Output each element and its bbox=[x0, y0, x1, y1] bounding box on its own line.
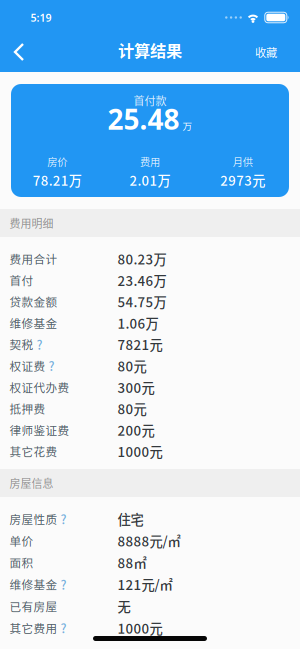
button[interactable]: 返回 bbox=[0, 31, 29, 73]
staticText: 1.06万 bbox=[117, 313, 158, 332]
staticText: 月供 bbox=[233, 154, 253, 169]
staticText: ? bbox=[36, 335, 42, 353]
staticText: 23.46万 bbox=[117, 270, 166, 290]
staticText: 其它费用 bbox=[9, 619, 57, 636]
staticText: 维修基金 bbox=[9, 314, 57, 331]
button[interactable]: 说明：房屋性质 bbox=[60, 510, 66, 528]
staticText: 80元 bbox=[117, 356, 146, 375]
button[interactable]: 说明：维修基金 bbox=[60, 575, 66, 593]
staticText: 契税 bbox=[9, 336, 33, 353]
staticText: 费用明细 bbox=[9, 215, 53, 231]
staticText: ? bbox=[60, 619, 66, 637]
staticText: 8888元/㎡ bbox=[117, 531, 180, 550]
button[interactable]: 说明：其它费用 bbox=[60, 619, 66, 637]
staticText: 律师鉴证费 bbox=[9, 421, 69, 438]
staticText: 1000元 bbox=[117, 618, 162, 637]
staticText: 收藏 bbox=[255, 44, 277, 60]
staticText: 其它花费 bbox=[9, 443, 57, 460]
staticText: ? bbox=[60, 575, 66, 593]
staticText: 5:19 bbox=[30, 10, 51, 25]
staticText: 权证费 bbox=[9, 357, 45, 374]
staticText: 7821元 bbox=[117, 335, 162, 354]
staticText: 面积 bbox=[9, 554, 33, 571]
staticText: 25.48 bbox=[107, 100, 179, 138]
staticText: 计算结果 bbox=[118, 38, 182, 62]
button[interactable]: 说明：权证费 bbox=[48, 357, 54, 375]
staticText: 住宅 bbox=[117, 509, 143, 528]
staticText: 房价 bbox=[47, 154, 67, 169]
staticText: 费用 bbox=[140, 154, 160, 169]
staticText: 200元 bbox=[117, 420, 154, 439]
staticText: 首付 bbox=[9, 272, 33, 288]
staticText: 54.75万 bbox=[117, 292, 166, 311]
staticText: 2973元 bbox=[220, 170, 265, 189]
button[interactable]: 收藏 bbox=[247, 32, 300, 72]
staticText: 80.23万 bbox=[117, 249, 166, 268]
staticText: 贷款金额 bbox=[9, 293, 57, 310]
staticText: 费用合计 bbox=[9, 250, 57, 267]
staticText: 已有房屋 bbox=[9, 598, 57, 614]
button[interactable]: 说明：契税 bbox=[36, 335, 42, 353]
staticText: 房屋信息 bbox=[9, 475, 53, 491]
staticText: 无 bbox=[117, 596, 130, 616]
staticText: 300元 bbox=[117, 377, 154, 397]
staticText: 权证代办费 bbox=[9, 379, 69, 395]
staticText: 抵押费 bbox=[9, 400, 45, 417]
staticText: 88㎡ bbox=[117, 553, 146, 572]
staticText: 80元 bbox=[117, 399, 146, 418]
staticText: 单价 bbox=[9, 532, 33, 549]
staticText: 万 bbox=[182, 119, 192, 133]
staticText: ? bbox=[48, 357, 54, 375]
staticText: 121元/㎡ bbox=[117, 575, 172, 594]
staticText: 2.01万 bbox=[129, 170, 170, 189]
staticText: 首付款 bbox=[133, 92, 166, 108]
staticText: ? bbox=[60, 510, 66, 528]
staticText: 房屋性质 bbox=[9, 510, 57, 527]
staticText: 78.21万 bbox=[33, 170, 82, 189]
staticText: 1000元 bbox=[117, 442, 162, 461]
staticText: 维修基金 bbox=[9, 576, 57, 593]
